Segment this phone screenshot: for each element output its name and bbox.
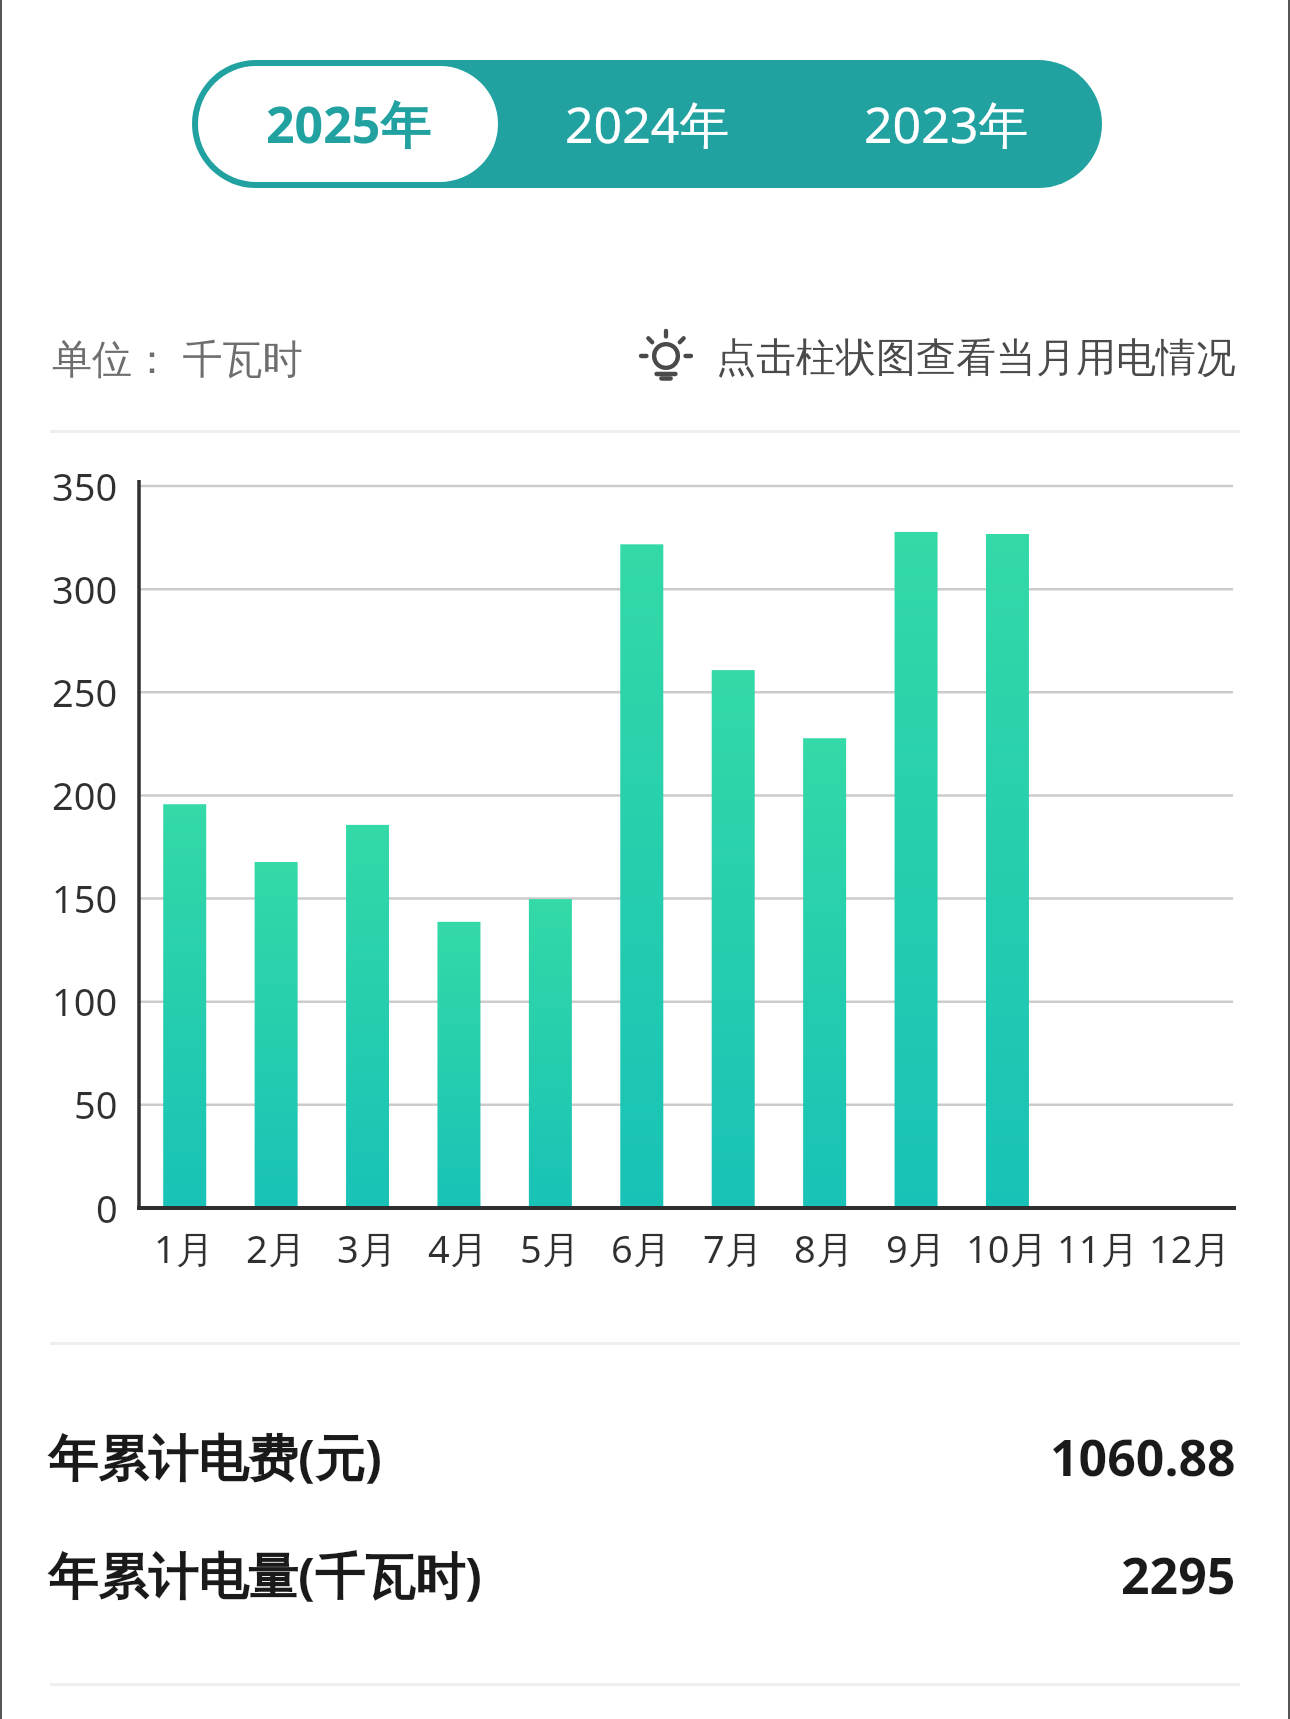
staticText: 2025年 [266,90,431,158]
button[interactable]: 2025年 [198,66,498,182]
staticText: 12月 [1149,1222,1231,1274]
staticText: 200 [52,769,118,821]
staticText: 300 [52,563,118,615]
staticText: 4月 [428,1222,488,1274]
staticText: 1月 [154,1222,214,1274]
staticText: 2295 [1121,1541,1236,1609]
staticText: 6月 [611,1222,671,1274]
button[interactable]: 2024年 [498,66,797,182]
staticText: 2月 [246,1222,306,1274]
staticText: 2024年 [565,90,730,158]
staticText: 1060.88 [1050,1423,1236,1491]
button[interactable]: 年累计电量(千瓦时) [48,1535,1236,1615]
staticText: 2023年 [864,90,1029,158]
staticText: 年累计电费(元) [48,1423,382,1491]
staticText: 点击柱状图查看当月用电情况 [716,332,1236,382]
staticText: 100 [52,975,118,1027]
button[interactable]: 年累计电费(元) [48,1417,1236,1497]
staticText: 10月 [966,1222,1048,1274]
staticText: 单位： 千瓦时 [52,330,303,385]
staticText: 9月 [886,1222,946,1274]
staticText: 3月 [337,1222,397,1274]
staticText: 5月 [520,1222,580,1274]
staticText: 年累计电量(千瓦时) [48,1541,482,1609]
button[interactable]: 2023年 [797,66,1096,182]
staticText: 8月 [794,1222,854,1274]
staticText: 0 [96,1182,118,1234]
staticText: 250 [52,666,118,718]
staticText: 150 [52,872,118,924]
staticText: 50 [74,1078,118,1130]
staticText: 350 [52,460,118,512]
staticText: 11月 [1057,1222,1139,1274]
staticText: 7月 [703,1222,763,1274]
